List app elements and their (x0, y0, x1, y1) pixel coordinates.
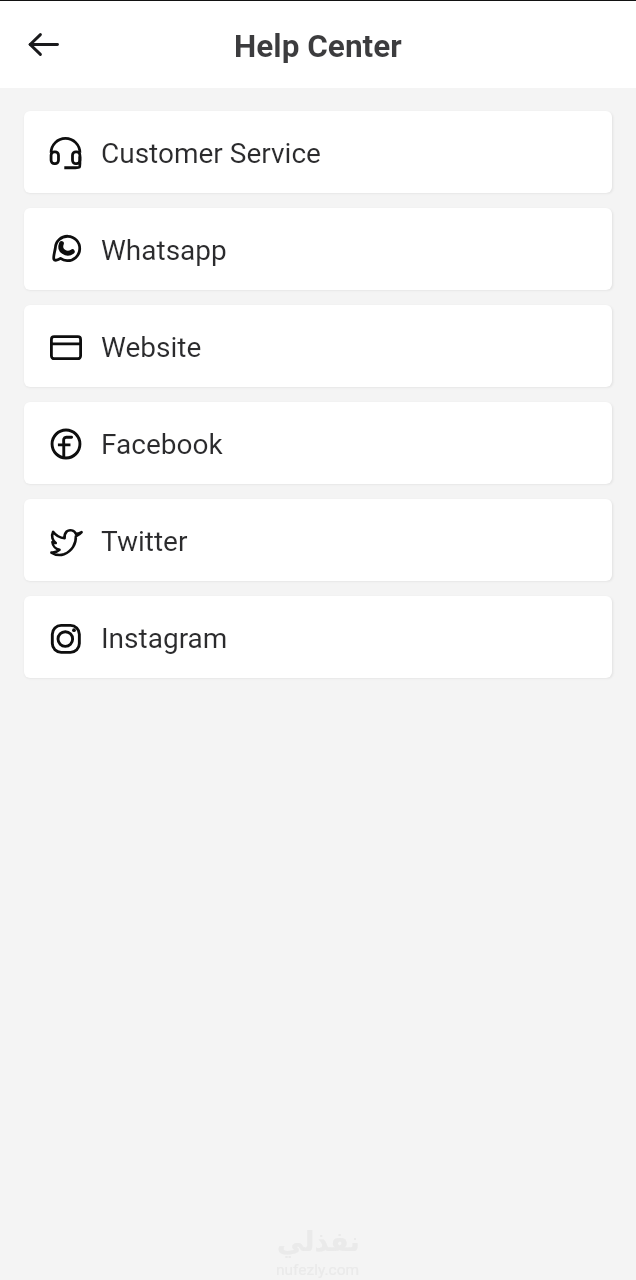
staticText: Website (101, 331, 202, 364)
button[interactable]: Customer Service (24, 111, 612, 193)
staticText: Facebook (101, 428, 223, 461)
staticText: Instagram (101, 622, 228, 655)
button[interactable]: Website (24, 305, 612, 387)
button[interactable]: Whatsapp (24, 208, 612, 290)
staticText: Customer Service (101, 137, 321, 170)
staticText: Twitter (101, 525, 188, 558)
staticText: نفذلي (277, 1226, 360, 1257)
button[interactable]: Back (12, 13, 74, 75)
staticText: Whatsapp (101, 234, 227, 267)
button[interactable]: Twitter (24, 499, 612, 581)
staticText: nufezly.com (276, 1261, 360, 1279)
staticText: Help Center (234, 28, 402, 65)
button[interactable]: Instagram (24, 596, 612, 678)
button[interactable]: Facebook (24, 402, 612, 484)
